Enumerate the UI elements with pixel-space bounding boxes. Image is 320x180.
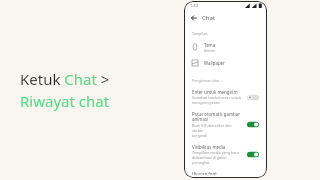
button[interactable]: Enter untuk mengirim (247, 94, 259, 101)
staticText: Enter untuk mengirim (192, 89, 238, 95)
button[interactable]: Putar otomatis gambar animasi (184, 108, 267, 141)
button[interactable]: Enter untuk mengirim (184, 86, 267, 108)
staticText: Tampilkan media yang baru didownload di … (192, 150, 243, 165)
staticText: Ketuk Chat > (20, 69, 110, 89)
other: Back (190, 14, 198, 22)
staticText: Chat (202, 14, 216, 22)
staticText: Pengiriman dan... (192, 78, 222, 83)
staticText: Wallpaper (204, 60, 225, 66)
staticText: 1:33 (190, 3, 198, 8)
button[interactable]: Putar otomatis gambar animasi (247, 121, 259, 128)
button[interactable]: Visibilitas media (247, 151, 259, 158)
button[interactable]: Wallpaper (184, 55, 267, 71)
staticText: Gunakan tombol enter untuk mengirim pesa… (192, 95, 242, 105)
staticText: Tema (204, 42, 216, 48)
button[interactable]: Ukuran font (184, 168, 267, 178)
staticText: Buat GIF dan stiker dan sticker bergerak (192, 123, 243, 138)
staticText: Visibilitas media (192, 144, 226, 150)
staticText: Ukuran font (192, 171, 217, 175)
button[interactable]: Tema (184, 39, 267, 55)
staticText: Riwayat chat (20, 91, 110, 111)
staticText: Putar otomatis gambar animasi (192, 111, 241, 123)
staticText: Tampilan (192, 31, 208, 36)
button[interactable]: Back (184, 10, 267, 26)
other: Tema (192, 44, 198, 50)
other: Wallpaper (192, 60, 198, 66)
button[interactable]: Visibilitas media (184, 141, 267, 168)
staticText: Sistem (204, 48, 216, 53)
